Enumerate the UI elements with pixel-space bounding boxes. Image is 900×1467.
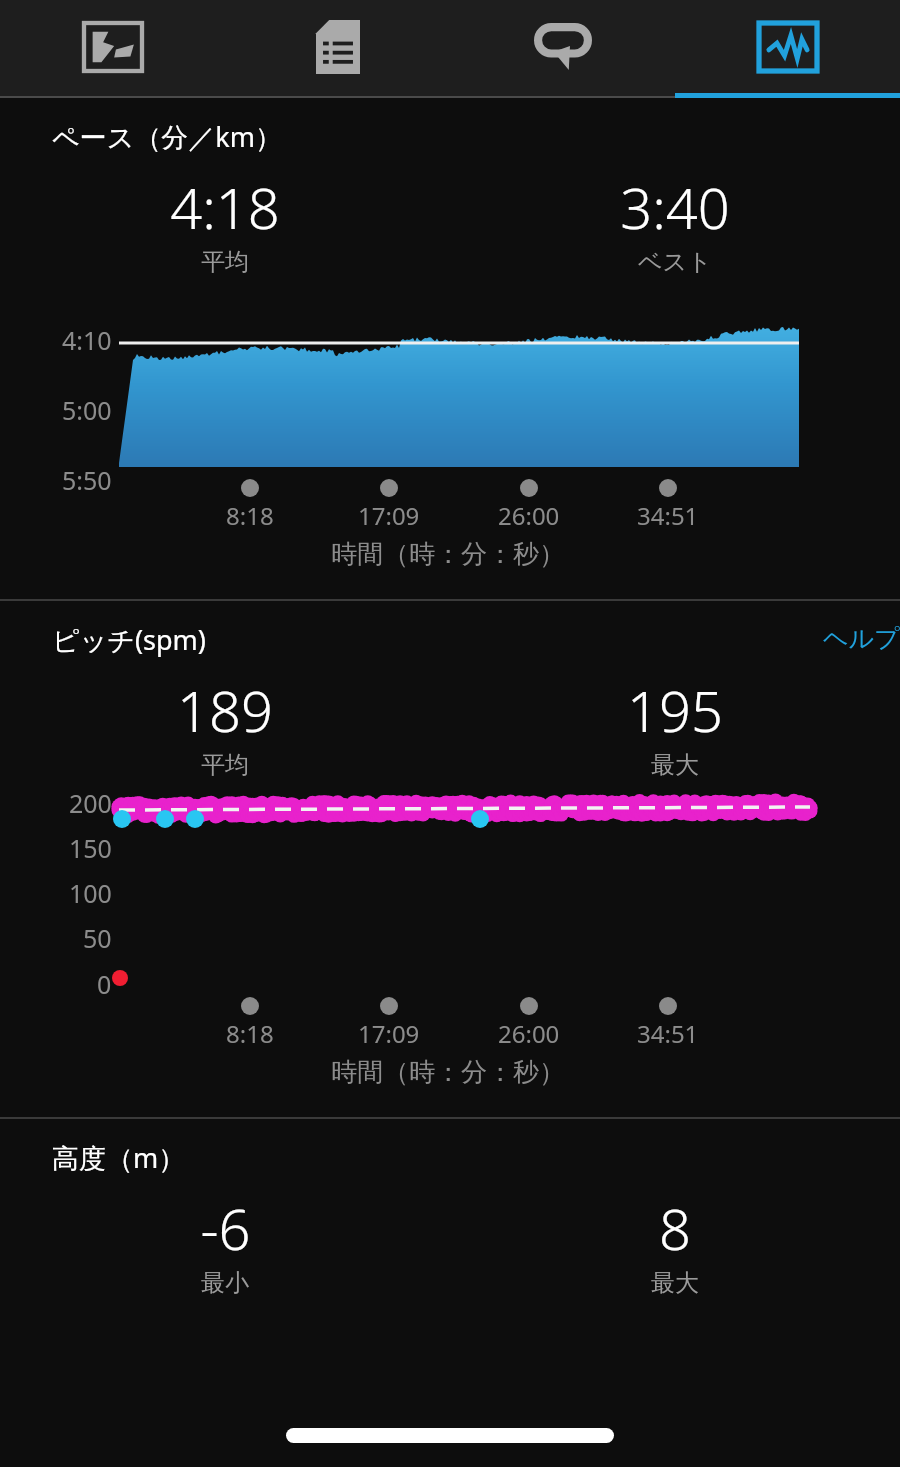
staticText: 0 xyxy=(97,967,112,1001)
staticText: 150 xyxy=(69,831,112,865)
staticText: 26:00 xyxy=(498,499,560,532)
staticText: 最大 xyxy=(651,750,699,780)
staticText: 5:50 xyxy=(62,463,112,497)
staticText: 平均 xyxy=(201,750,249,780)
staticText: ペース（分／km） xyxy=(52,118,282,155)
staticText: 3:40 xyxy=(620,169,730,245)
staticText: 5:00 xyxy=(62,393,112,427)
button[interactable]: Map xyxy=(0,0,225,93)
staticText: 195 xyxy=(627,672,723,748)
staticText: 26:00 xyxy=(498,1017,560,1050)
button[interactable]: Charts xyxy=(675,0,900,93)
staticText: 200 xyxy=(69,786,112,820)
staticText: 8:18 xyxy=(226,1017,274,1050)
staticText: 17:09 xyxy=(358,1017,420,1050)
staticText: 34:51 xyxy=(637,1017,699,1050)
staticText: -6 xyxy=(200,1190,251,1266)
staticText: 189 xyxy=(177,672,273,748)
staticText: 100 xyxy=(69,876,112,910)
staticText: 17:09 xyxy=(358,499,420,532)
staticText: 最小 xyxy=(201,1268,249,1298)
staticText: 34:51 xyxy=(637,499,699,532)
staticText: 時間（時：分：秒） xyxy=(331,1056,565,1089)
staticText: ヘルプ xyxy=(823,623,900,654)
staticText: 時間（時：分：秒） xyxy=(331,538,565,571)
button[interactable]: ヘルプ xyxy=(823,623,900,654)
staticText: 8:18 xyxy=(226,499,274,532)
button[interactable]: Details xyxy=(225,0,450,93)
staticText: 4:18 xyxy=(170,169,280,245)
staticText: 高度（m） xyxy=(52,1139,186,1176)
staticText: ピッチ(spm) xyxy=(52,621,206,658)
staticText: 4:10 xyxy=(62,323,112,357)
staticText: 平均 xyxy=(201,247,249,277)
staticText: 8 xyxy=(659,1190,691,1266)
staticText: 最大 xyxy=(651,1268,699,1298)
staticText: 50 xyxy=(83,921,112,955)
button[interactable]: Laps xyxy=(450,0,675,93)
staticText: ベスト xyxy=(638,247,712,277)
